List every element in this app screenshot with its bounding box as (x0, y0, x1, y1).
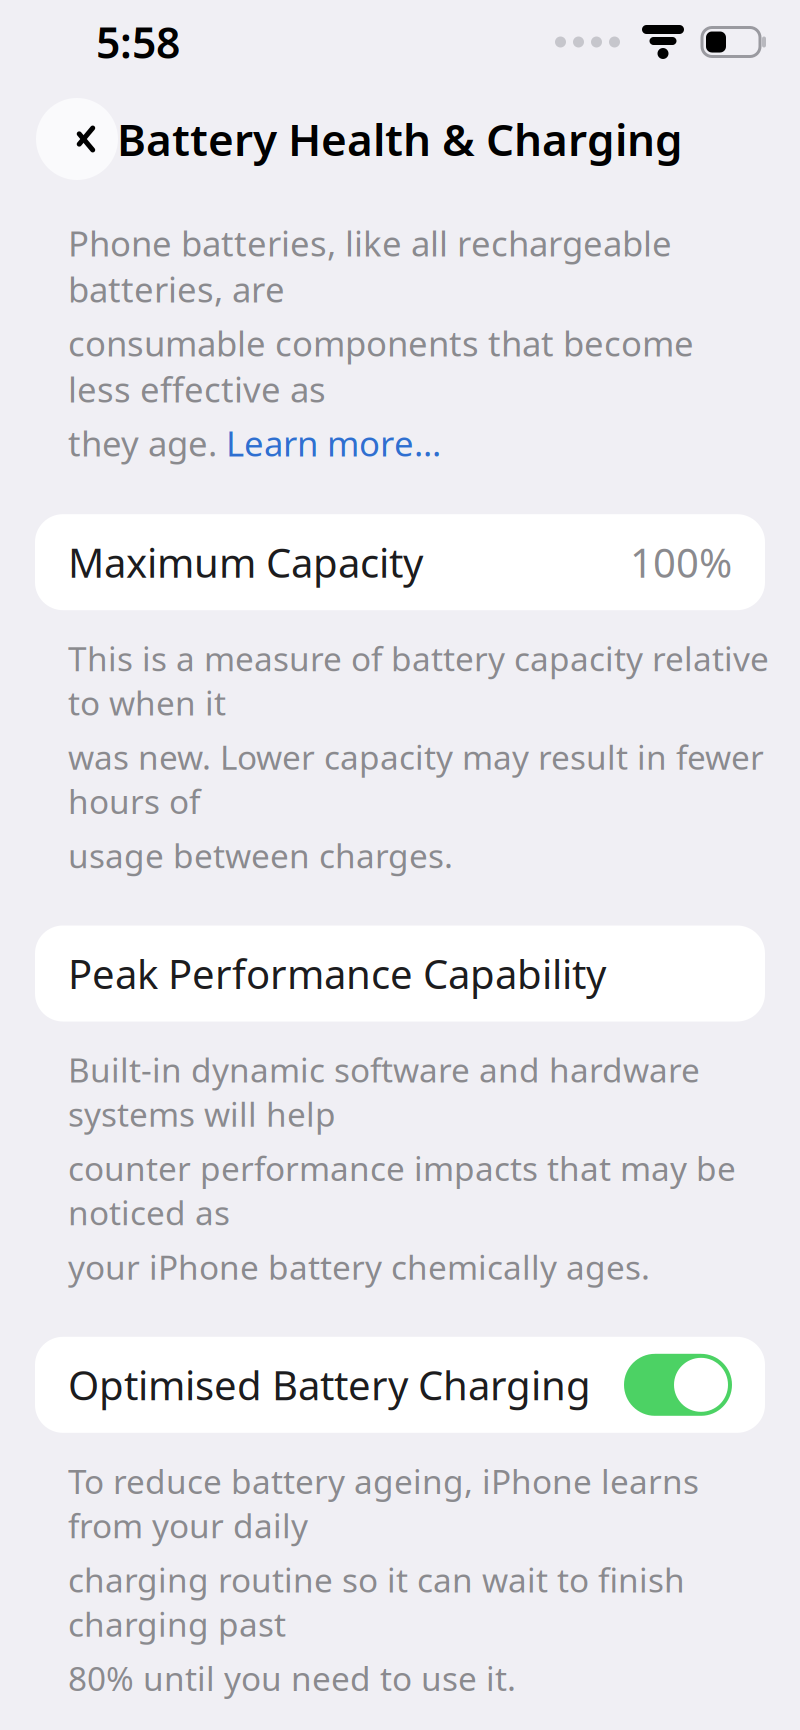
staticText: consumable components that become less e… (68, 320, 694, 412)
staticText: they age. (68, 420, 226, 466)
staticText: To reduce battery ageing, iPhone learns … (68, 1459, 699, 1547)
button[interactable]: Optimised Battery Charging (35, 1337, 765, 1433)
staticText: This is a measure of battery capacity re… (68, 636, 769, 725)
staticText: usage between charges. (68, 833, 453, 877)
staticText: Peak Performance Capability (68, 947, 606, 1000)
staticText: 80% until you need to use it. (68, 1656, 516, 1700)
button[interactable]: Maximum Capacity (35, 514, 765, 610)
staticText: your iPhone battery chemically ages. (68, 1245, 650, 1289)
button[interactable]: Back (36, 98, 118, 180)
staticText: 5:58 (96, 14, 180, 70)
staticText: Learn more... (226, 420, 441, 466)
staticText: Optimised Battery Charging (68, 1358, 591, 1411)
staticText: Built-in dynamic software and hardware s… (68, 1047, 700, 1136)
button[interactable]: Learn more... (226, 420, 441, 466)
staticText: 100% (630, 536, 732, 589)
staticText: counter performance impacts that may be … (68, 1146, 736, 1234)
staticText: Maximum Capacity (68, 536, 423, 589)
staticText: was new. Lower capacity may result in fe… (68, 735, 764, 823)
staticText: charging routine so it can wait to finis… (68, 1557, 685, 1646)
staticText: Phone batteries, like all rechargeable b… (68, 220, 672, 312)
staticText: Battery Health & Charging (117, 110, 683, 168)
button[interactable]: Peak Performance Capability (35, 925, 765, 1021)
